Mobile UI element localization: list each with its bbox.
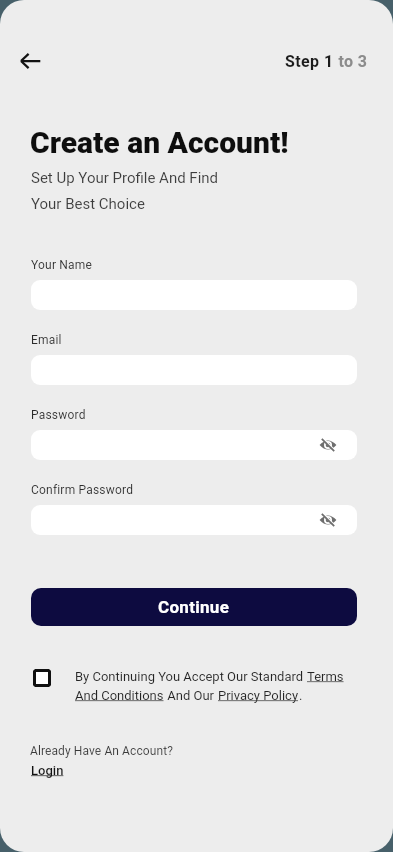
staticText: Password [31, 408, 86, 422]
staticText: Privacy Policy [218, 688, 299, 703]
staticText: By Continuing You Accept Our Standard [75, 669, 307, 684]
staticText: And Our [164, 688, 218, 703]
staticText: Email [31, 333, 62, 347]
staticText: And Conditions [75, 688, 164, 703]
button[interactable] [31, 430, 357, 460]
staticText: Set Up Your Profile And Find [31, 169, 219, 187]
button[interactable]: Terms [307, 669, 344, 684]
button[interactable]: Login [31, 763, 64, 778]
button[interactable] [16, 46, 46, 76]
staticText: . [299, 688, 303, 703]
staticText: Login [31, 763, 64, 778]
button[interactable] [319, 436, 337, 454]
button[interactable] [31, 505, 357, 535]
staticText: to 3 [334, 52, 368, 71]
staticText: Already Have An Account? [30, 744, 173, 758]
button[interactable]: Privacy Policy [218, 688, 299, 703]
staticText: Step 1 [285, 52, 334, 71]
button[interactable] [33, 669, 51, 687]
staticText: Your Best Choice [31, 195, 145, 213]
button[interactable]: Continue [31, 588, 357, 626]
staticText: Terms [307, 669, 344, 684]
button[interactable]: And Conditions [75, 688, 164, 703]
staticText: Your Name [31, 258, 93, 272]
staticText: Continue [158, 597, 230, 617]
staticText: Create an Account! [30, 125, 289, 160]
staticText: Confirm Password [31, 483, 134, 497]
button[interactable] [319, 511, 337, 529]
